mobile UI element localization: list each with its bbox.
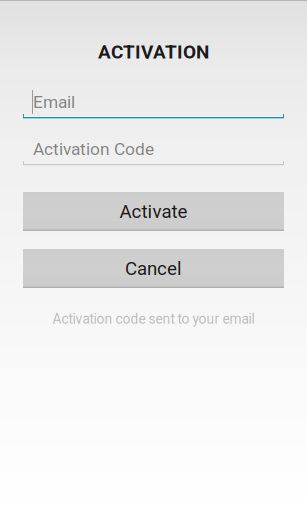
button[interactable]: Activate bbox=[23, 192, 284, 231]
staticText: Activate bbox=[119, 201, 187, 222]
staticText: Activation Code bbox=[33, 139, 154, 159]
button[interactable]: Cancel bbox=[23, 249, 284, 288]
staticText: Activation code sent to your email bbox=[52, 311, 254, 327]
staticText: Email bbox=[33, 92, 75, 112]
staticText: ACTIVATION bbox=[98, 41, 209, 63]
staticText: Cancel bbox=[125, 258, 182, 279]
